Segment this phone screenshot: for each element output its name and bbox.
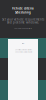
staticText: consectetur adipiscing elit (14, 51, 31, 53)
staticText: Scheduling (15, 11, 31, 14)
staticText: Vehicle criteria (12, 7, 34, 10)
staticText: Set your vehicle requirements (2, 18, 44, 21)
staticText: Learn more about criteria (14, 28, 32, 29)
staticText: 9:41 (21, 42, 24, 44)
staticText: and pick time windows. (7, 21, 39, 24)
staticText: Lorem ipsum dolor sit amet (14, 49, 31, 51)
